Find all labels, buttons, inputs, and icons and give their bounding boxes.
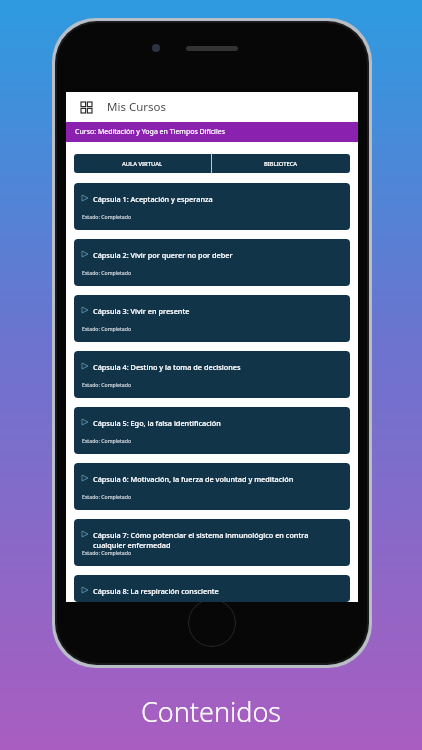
staticText: Cápsula 5: Ego, la falsa identificación [93,418,221,428]
staticText: Cápsula 3: Vivir en presente [93,306,190,316]
staticText: Estado: Completado [82,437,132,444]
staticText: Estado: Completado [82,549,132,556]
button[interactable]: Cápsula 1: Aceptación y esperanza [74,183,350,230]
staticText: Mis Cursos [107,99,166,115]
button[interactable]: BIBLIOTECA [212,154,350,173]
staticText: Estado: Completado [82,493,132,500]
staticText: Estado: Completado [82,213,132,220]
staticText: Estado: Completado [82,325,132,332]
staticText: Cápsula 1: Aceptación y esperanza [93,194,213,204]
staticText: BIBLIOTECA [264,160,298,168]
staticText: Estado: Completado [82,381,132,388]
button[interactable]: Cápsula 4: Destino y la toma de decision… [74,351,350,398]
button[interactable]: Cápsula 2: Vivir por querer no por deber [74,239,350,286]
staticText: Cápsula 6: Motivación, la fuerza de volu… [93,474,294,484]
staticText: Curso: Meditación y Yoga en Tiempos Difí… [75,127,226,137]
staticText: Cápsula 2: Vivir por querer no por deber [93,250,233,260]
button[interactable]: Cápsula 7: Cómo potenciar el sistema inm… [74,519,350,566]
staticText: Cápsula 8: La respiración consciente [93,586,219,596]
button[interactable]: Cápsula 8: La respiración consciente [74,575,350,602]
button[interactable]: Menu [75,96,97,118]
staticText: Contenidos [141,693,281,730]
button[interactable]: Cápsula 5: Ego, la falsa identificación [74,407,350,454]
staticText: Cápsula 7: Cómo potenciar el sistema inm… [93,530,342,550]
button[interactable]: Cápsula 3: Vivir en presente [74,295,350,342]
staticText: Cápsula 4: Destino y la toma de decision… [93,362,241,372]
button[interactable]: Cápsula 6: Motivación, la fuerza de volu… [74,463,350,510]
button[interactable]: Home [188,599,236,647]
staticText: Estado: Completado [82,269,132,276]
button[interactable]: AULA VIRTUAL [74,154,211,173]
staticText: AULA VIRTUAL [122,160,163,168]
